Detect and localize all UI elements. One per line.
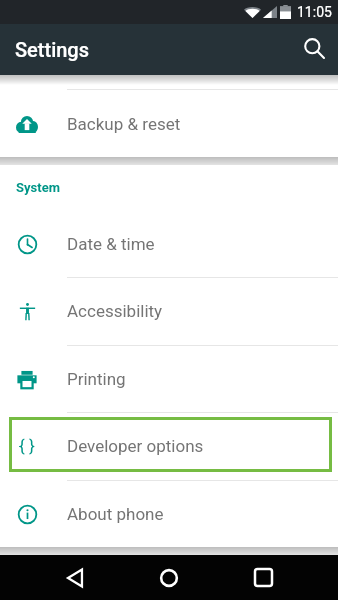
button[interactable]: About phone	[0, 480, 338, 548]
staticText: Settings	[15, 38, 90, 61]
button[interactable]: Backup & reset	[0, 90, 338, 158]
button[interactable]: Back	[51, 555, 99, 600]
button[interactable]: Recent apps	[239, 555, 287, 600]
button[interactable]: { }	[0, 412, 338, 480]
button[interactable]: Home	[145, 555, 193, 600]
button[interactable]: Accessibility	[0, 277, 338, 345]
staticText: { }	[19, 436, 35, 456]
staticText: Accessibility	[67, 301, 163, 321]
button[interactable]: Search	[293, 27, 337, 71]
button[interactable]: Printing	[0, 345, 338, 413]
button[interactable]: Date & time	[0, 210, 338, 278]
staticText: System	[16, 180, 60, 195]
staticText: 11:05	[297, 4, 332, 20]
staticText: Date & time	[67, 234, 155, 254]
staticText: About phone	[67, 504, 164, 524]
staticText: Backup & reset	[67, 114, 181, 134]
staticText: Developer options	[67, 436, 204, 456]
staticText: Printing	[67, 369, 126, 389]
